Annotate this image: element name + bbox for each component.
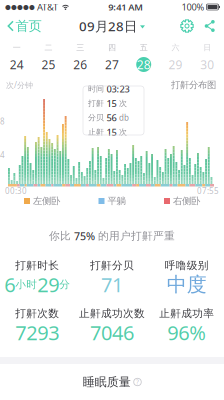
staticText: 15 (106, 97, 116, 109)
staticText: 打鼾 (88, 98, 104, 108)
staticText: 09月28日 (79, 17, 137, 35)
staticText: 4 (0, 150, 5, 160)
staticText: 00:30 (5, 186, 27, 196)
staticText: 分 (59, 278, 70, 291)
staticText: 打鼾次数 (15, 307, 59, 320)
staticText: 一 (13, 43, 21, 52)
staticText: 75% (74, 229, 95, 243)
staticText: 小时 (15, 278, 37, 291)
staticText: 03:23 (106, 83, 129, 95)
staticText: 6 (4, 271, 15, 298)
staticText: 56 (106, 111, 116, 124)
staticText: 打鼾时长 (15, 259, 59, 272)
staticText: ●●●●● (5, 3, 35, 11)
staticText: 睡眠质量 (83, 375, 131, 389)
staticText: 27 (105, 56, 119, 72)
staticText: 止鼾成功率 (159, 307, 214, 320)
staticText: 29 (168, 56, 182, 72)
staticText: 15 (106, 126, 116, 138)
staticText: 07:55 (197, 186, 219, 196)
button[interactable]: 六 (160, 38, 191, 72)
staticText: 打鼾分布图 (171, 79, 216, 91)
staticText: 日 (203, 43, 211, 52)
staticText: 9:41 AM (108, 1, 143, 13)
staticText: 8 (0, 116, 5, 127)
staticText: 分贝 (88, 113, 104, 123)
button[interactable]: 四 (96, 38, 128, 72)
button[interactable]: Share (197, 14, 222, 38)
staticText: 100% (181, 1, 204, 13)
button[interactable]: 日 (191, 38, 223, 72)
button[interactable]: 首页 (2, 14, 46, 38)
button[interactable]: 一 (1, 38, 33, 72)
staticText: 29 (37, 271, 59, 298)
staticText: 止鼾 (88, 127, 104, 137)
staticText: 首页 (15, 18, 41, 34)
staticText: 打鼾分贝 (90, 259, 134, 272)
staticText: 26 (73, 56, 87, 72)
staticText: ? (136, 378, 139, 386)
button[interactable]: 09月28日 (79, 14, 145, 38)
staticText: 25 (42, 56, 56, 72)
staticText: 7293 (15, 319, 59, 346)
staticText: 左侧卧 (33, 195, 60, 207)
button[interactable]: 三 (64, 38, 96, 72)
staticText: AT&T (35, 1, 58, 13)
staticText: 24 (10, 56, 24, 72)
staticText: 平躺 (107, 195, 125, 207)
staticText: 96% (167, 319, 206, 346)
staticText: 你比 (49, 229, 71, 242)
staticText: 中度 (167, 272, 207, 297)
staticText: 二 (45, 43, 53, 52)
staticText: 止鼾成功次数 (79, 307, 145, 320)
staticText: 28 (137, 56, 151, 72)
staticText: 时间 (88, 84, 104, 94)
staticText: 右侧卧 (173, 195, 200, 207)
button[interactable]: 五 (128, 38, 160, 72)
staticText: 7046 (90, 319, 134, 346)
button[interactable]: Settings (177, 14, 197, 38)
staticText: 四 (108, 43, 116, 52)
staticText: 30 (200, 56, 214, 72)
staticText: 71 (101, 271, 123, 298)
staticText: 次 (119, 127, 127, 137)
staticText: 六 (171, 43, 179, 52)
staticText: 次 (119, 98, 127, 108)
staticText: 三 (76, 43, 84, 52)
button[interactable]: 二 (33, 38, 64, 72)
staticText: db (119, 112, 129, 123)
staticText: 五 (140, 43, 148, 52)
staticText: 次/分钟 (6, 80, 33, 90)
staticText: 呼噜级别 (165, 259, 209, 272)
staticText: 的用户打鼾严重 (98, 229, 175, 242)
